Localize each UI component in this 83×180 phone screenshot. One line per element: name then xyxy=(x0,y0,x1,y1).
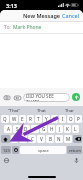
button[interactable]: W xyxy=(10,115,18,123)
staticText: Cancel xyxy=(62,12,80,19)
button[interactable]: space xyxy=(20,146,66,154)
button[interactable]: F xyxy=(31,125,39,133)
button[interactable]: Numbers xyxy=(1,146,11,154)
staticText: return xyxy=(69,148,81,153)
staticText: Y xyxy=(45,116,48,122)
staticText: Thar xyxy=(65,108,74,114)
button[interactable]: R xyxy=(27,115,34,123)
staticText: S xyxy=(16,126,19,132)
staticText: R xyxy=(29,116,32,122)
staticText: V xyxy=(40,136,43,142)
staticText: Z xyxy=(13,136,16,142)
button[interactable]: Thar xyxy=(55,106,83,115)
button[interactable]: P xyxy=(75,115,82,123)
staticText: P xyxy=(77,116,80,122)
button[interactable]: Keyboard xyxy=(3,157,10,164)
staticText: W xyxy=(12,116,17,122)
button[interactable]: Dictate xyxy=(73,157,80,164)
button[interactable]: Backspace xyxy=(73,135,82,143)
button[interactable]: I xyxy=(59,115,66,123)
staticText: J xyxy=(59,126,61,132)
staticText: space xyxy=(38,148,49,153)
staticText: B xyxy=(49,136,52,142)
button[interactable]: U xyxy=(51,115,58,123)
button[interactable]: M xyxy=(64,135,72,143)
button[interactable]: O xyxy=(67,115,74,123)
staticText: That xyxy=(37,108,46,114)
button[interactable]: That xyxy=(27,106,55,115)
staticText: M xyxy=(66,136,71,142)
button[interactable]: Apps xyxy=(13,93,22,102)
staticText: “That” xyxy=(8,108,20,114)
staticText: 3:13 xyxy=(6,2,17,9)
button[interactable]: Y xyxy=(43,115,50,123)
staticText: 123 xyxy=(3,148,10,153)
button[interactable]: E xyxy=(19,115,26,123)
staticText: F xyxy=(34,126,37,132)
button[interactable]: Z xyxy=(11,135,18,143)
button[interactable]: X xyxy=(19,135,27,143)
staticText: O xyxy=(69,116,73,122)
button[interactable]: J xyxy=(56,125,63,133)
button[interactable]: K xyxy=(64,125,71,133)
staticText: To: xyxy=(4,24,11,31)
staticText: I xyxy=(62,116,64,122)
button[interactable]: V xyxy=(37,135,45,143)
staticText: U xyxy=(53,116,57,122)
staticText: G xyxy=(42,126,46,132)
button[interactable]: To: xyxy=(0,22,83,33)
button[interactable]: return xyxy=(67,146,82,154)
button[interactable]: Shift xyxy=(1,135,10,143)
staticText: L xyxy=(74,126,77,132)
button[interactable]: N xyxy=(55,135,63,143)
button[interactable]: G xyxy=(40,125,47,133)
staticText: X xyxy=(22,136,25,142)
button[interactable]: H xyxy=(48,125,55,133)
staticText: H xyxy=(50,126,54,132)
button[interactable]: A xyxy=(4,125,12,133)
staticText: Q xyxy=(3,116,7,122)
button[interactable]: Q xyxy=(1,115,9,123)
staticText: New Message xyxy=(23,12,61,19)
staticText: K xyxy=(66,126,69,132)
staticText: T xyxy=(37,116,40,122)
button[interactable]: S xyxy=(13,125,21,133)
staticText: D xyxy=(24,126,28,132)
button[interactable]: Camera xyxy=(2,93,11,102)
staticText: Mark Phone xyxy=(13,24,42,31)
staticText: C xyxy=(31,136,34,142)
staticText: A xyxy=(7,126,10,132)
button[interactable]: “That” xyxy=(0,106,27,115)
staticText: E xyxy=(21,116,24,122)
staticText: DID YOU SEE THAT? xyxy=(26,93,68,102)
button[interactable]: DID YOU SEE THAT? xyxy=(23,93,70,102)
button[interactable]: B xyxy=(46,135,54,143)
button[interactable]: Cancel xyxy=(59,10,83,21)
button[interactable]: Send xyxy=(72,93,80,101)
button[interactable]: L xyxy=(72,125,79,133)
button[interactable]: C xyxy=(28,135,36,143)
button[interactable]: T xyxy=(35,115,42,123)
button[interactable]: Emoji xyxy=(12,146,19,154)
staticText: N xyxy=(57,136,61,142)
button[interactable]: D xyxy=(22,125,30,133)
